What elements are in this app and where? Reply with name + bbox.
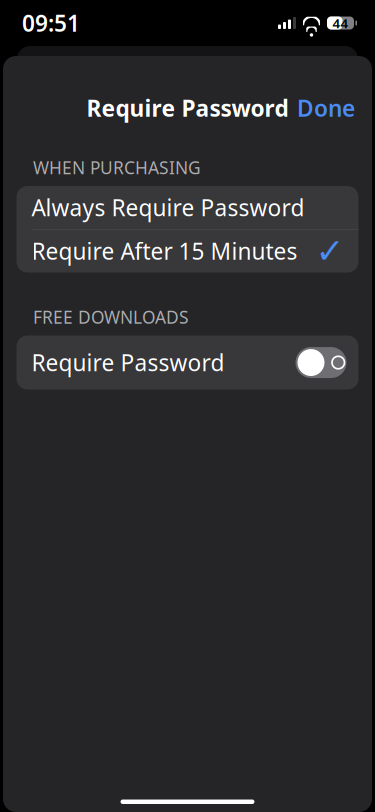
- button[interactable]: Always Require Password: [16, 186, 358, 229]
- staticText: ✓: [315, 231, 344, 271]
- button[interactable]: Require Password: [16, 335, 358, 389]
- staticText: Require Password: [31, 347, 224, 378]
- staticText: 09:51: [22, 8, 80, 38]
- button[interactable]: Done: [287, 84, 365, 132]
- staticText: Require After 15 Minutes: [31, 236, 297, 266]
- staticText: WHEN PURCHASING: [33, 156, 201, 179]
- staticText: FREE DOWNLOADS: [33, 305, 189, 328]
- staticText: Require Password: [86, 93, 288, 123]
- staticText: 44: [332, 14, 348, 32]
- staticText: Done: [297, 93, 355, 123]
- button[interactable]: Require After 15 Minutes: [16, 229, 358, 272]
- staticText: Always Require Password: [31, 192, 304, 223]
